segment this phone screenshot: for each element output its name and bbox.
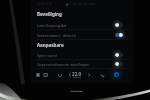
staticText: Radio 538 xyxy=(37,2,52,6)
button[interactable]: Temperature down xyxy=(67,72,72,77)
staticText: Beveiliging xyxy=(37,11,62,17)
button[interactable]: Power xyxy=(114,72,119,77)
staticText: Verkeersbord - detectie xyxy=(37,33,77,38)
button[interactable]: Seat heat xyxy=(35,72,40,77)
button[interactable]: Fan speed xyxy=(57,72,62,77)
staticText: Aanpasbare xyxy=(37,42,64,48)
button[interactable]: Air flow xyxy=(100,72,105,77)
other: Play xyxy=(66,3,69,6)
button[interactable]: Toggle xyxy=(115,33,123,37)
staticText: 22.0 xyxy=(72,71,82,77)
button[interactable]: Toggle xyxy=(115,62,123,66)
button[interactable]: Toggle xyxy=(115,23,123,27)
button[interactable]: Temperature up xyxy=(86,72,91,77)
button[interactable]: Lane Keeping Aid xyxy=(31,20,133,30)
staticText: Lane Keeping Aid xyxy=(37,23,67,28)
button[interactable]: Gepersonaliseerde instellingen xyxy=(31,59,133,69)
button[interactable]: Verkeersbord - detectie xyxy=(31,30,133,40)
staticText: Sport-stand xyxy=(37,53,57,58)
staticText: Gepersonaliseerde instellingen xyxy=(37,62,90,67)
staticText: Nu op de radio xyxy=(73,2,96,6)
button[interactable]: Sport-stand xyxy=(31,50,133,60)
button[interactable]: Rear defrost xyxy=(43,72,48,77)
button[interactable]: Toggle xyxy=(115,53,123,57)
